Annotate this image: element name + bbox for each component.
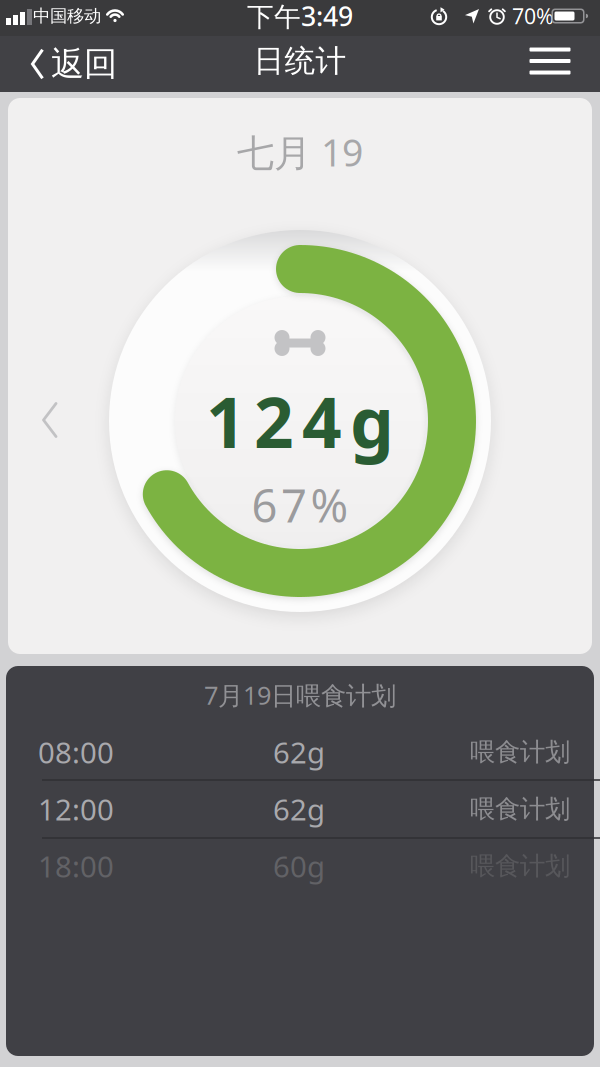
staticText: 18:00	[38, 846, 114, 885]
staticText: 62g	[273, 789, 325, 828]
staticText: 7月19日喂食计划	[204, 678, 396, 712]
staticText: 08:00	[38, 732, 114, 771]
staticText: 日统计	[253, 42, 346, 80]
staticText: 喂食计划	[470, 793, 570, 824]
staticText: 中国移动	[33, 5, 101, 27]
button[interactable]: 菜单	[515, 33, 584, 89]
button[interactable]: 返回	[7, 36, 117, 92]
staticText: 62g	[273, 732, 325, 771]
button[interactable]: 08:00	[6, 724, 594, 780]
staticText: 67%	[251, 475, 348, 535]
button[interactable]: 18:00	[6, 838, 594, 894]
staticText: 12:00	[38, 789, 114, 828]
button[interactable]: 前一天	[32, 392, 68, 448]
staticText: 喂食计划	[470, 736, 570, 767]
staticText: 70%	[512, 2, 554, 30]
staticText: 返回	[51, 43, 117, 84]
staticText: 下午3:49	[247, 0, 353, 34]
staticText: 60g	[273, 846, 325, 885]
staticText: 124g	[206, 375, 394, 467]
button[interactable]: 12:00	[6, 781, 594, 837]
staticText: 七月 19	[237, 127, 363, 177]
staticText: 喂食计划	[470, 850, 570, 881]
